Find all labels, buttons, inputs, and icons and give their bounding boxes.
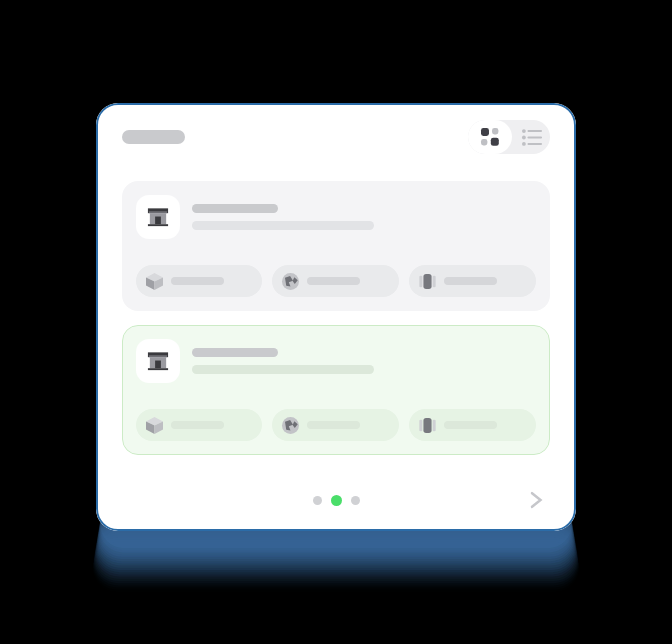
button[interactable] [136,409,262,441]
button[interactable] [122,181,550,311]
button[interactable] [313,496,322,505]
button[interactable]: List view [512,120,550,154]
button[interactable]: Next [518,482,554,518]
button[interactable] [272,265,399,297]
button[interactable] [331,495,342,506]
button[interactable] [272,409,399,441]
button[interactable] [122,325,550,455]
button[interactable] [351,496,360,505]
button[interactable]: Grid view [468,120,512,154]
button[interactable] [409,409,536,441]
button[interactable] [409,265,536,297]
button[interactable] [136,265,262,297]
